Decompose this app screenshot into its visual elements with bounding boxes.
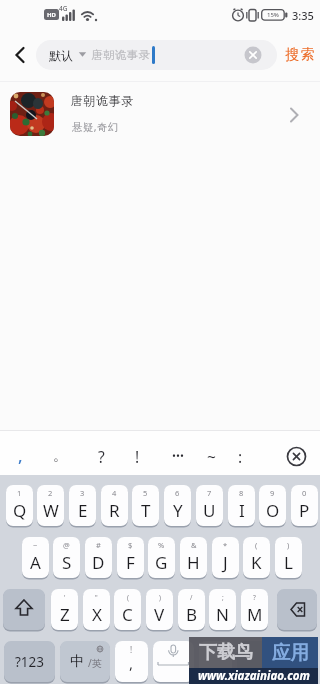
button[interactable]: ) [146, 589, 173, 630]
staticText: V [154, 603, 165, 626]
button[interactable] [285, 445, 308, 468]
staticText: ?123 [15, 653, 45, 671]
button[interactable]: ( [243, 537, 270, 578]
button[interactable]: ~ [22, 537, 49, 578]
staticText: " [95, 593, 98, 602]
button[interactable]: 搜索 [281, 40, 319, 70]
staticText: E [78, 499, 88, 522]
staticText: D [92, 551, 105, 574]
staticText: 5 [143, 488, 148, 498]
button[interactable]: % [148, 537, 175, 578]
staticText: F [126, 551, 135, 574]
button[interactable]: ! [115, 641, 148, 682]
staticText: G [155, 551, 168, 574]
staticText: A [30, 551, 41, 574]
button[interactable]: 1 [6, 485, 33, 526]
button[interactable] [0, 86, 320, 144]
staticText: 2 [48, 488, 53, 498]
staticText: 唐朝诡事录 [91, 48, 151, 62]
staticText: L [284, 551, 293, 574]
staticText: 3 [80, 488, 85, 498]
staticText: N [216, 603, 229, 626]
staticText: ~ [33, 540, 38, 550]
button[interactable] [153, 641, 194, 682]
staticText: /英 [88, 656, 102, 670]
staticText: 3:35 [292, 8, 314, 22]
staticText: & [191, 540, 197, 550]
staticText: 8 [239, 488, 244, 498]
button[interactable]: ( [114, 589, 141, 630]
staticText: / [190, 593, 193, 602]
staticText: W [43, 499, 59, 522]
button[interactable]: 3 [69, 485, 96, 526]
button[interactable]: $ [117, 537, 144, 578]
button[interactable]: 0 [291, 485, 318, 526]
button[interactable]: 5 [132, 485, 159, 526]
staticText: S [62, 551, 72, 574]
staticText: 6 [175, 488, 180, 498]
staticText: ! [135, 446, 140, 467]
button[interactable]: 9 [259, 485, 286, 526]
staticText: 默认 [49, 48, 73, 63]
button[interactable] [244, 46, 262, 64]
staticText: 4 [112, 488, 117, 498]
staticText: @ [63, 540, 70, 550]
staticText: , [18, 444, 23, 467]
staticText: HD [47, 11, 56, 19]
staticText: Q [13, 499, 27, 522]
staticText: H [187, 551, 200, 574]
staticText: ~ [207, 446, 216, 467]
button[interactable]: 中 [60, 641, 110, 682]
staticText: O [266, 499, 280, 522]
staticText: 应用 [272, 641, 309, 664]
staticText: ' [64, 593, 66, 602]
button[interactable] [3, 589, 45, 630]
staticText: # [96, 540, 101, 550]
staticText: 。 [53, 447, 67, 465]
staticText: ( [255, 540, 258, 550]
button[interactable]: " [83, 589, 110, 630]
button[interactable]: 7 [196, 485, 223, 526]
button[interactable] [237, 641, 317, 682]
button[interactable]: 2 [37, 485, 64, 526]
staticText: Y [173, 499, 183, 522]
button[interactable] [277, 589, 317, 630]
staticText: P [299, 499, 310, 522]
staticText: www.xiazainiao.com [198, 668, 310, 684]
button[interactable]: & [180, 537, 207, 578]
staticText: 15% [267, 11, 279, 19]
button[interactable]: ' [51, 589, 78, 630]
staticText: 0 [302, 488, 307, 498]
button[interactable]: ? [241, 589, 268, 630]
button[interactable]: # [85, 537, 112, 578]
button[interactable]: ?123 [4, 641, 55, 682]
button[interactable]: ) [275, 537, 302, 578]
staticText: 9 [270, 488, 275, 498]
staticText: $ [128, 540, 133, 550]
staticText: * [223, 540, 228, 550]
staticText: 4G [59, 4, 68, 13]
button[interactable]: ; [209, 589, 236, 630]
staticText: 悬疑,奇幻 [72, 120, 119, 133]
staticText: 1 [17, 488, 22, 498]
button[interactable]: * [212, 537, 239, 578]
staticText: 7 [207, 488, 212, 498]
button[interactable]: / [178, 589, 205, 630]
staticText: : [238, 446, 243, 467]
button[interactable]: 6 [164, 485, 191, 526]
button[interactable]: 8 [228, 485, 255, 526]
staticText: U [203, 499, 216, 522]
staticText: M [247, 603, 263, 626]
staticText: 下载鸟 [199, 641, 253, 664]
staticText: 搜索 [285, 46, 315, 64]
button[interactable] [199, 641, 232, 682]
staticText: ? [253, 593, 256, 602]
staticText: ; [222, 593, 224, 602]
button[interactable]: 4 [101, 485, 128, 526]
staticText: R [109, 499, 120, 522]
staticText: 中 [70, 653, 84, 671]
staticText: K [251, 551, 262, 574]
button[interactable] [6, 42, 32, 68]
staticText: T [141, 499, 151, 522]
button[interactable]: @ [53, 537, 80, 578]
